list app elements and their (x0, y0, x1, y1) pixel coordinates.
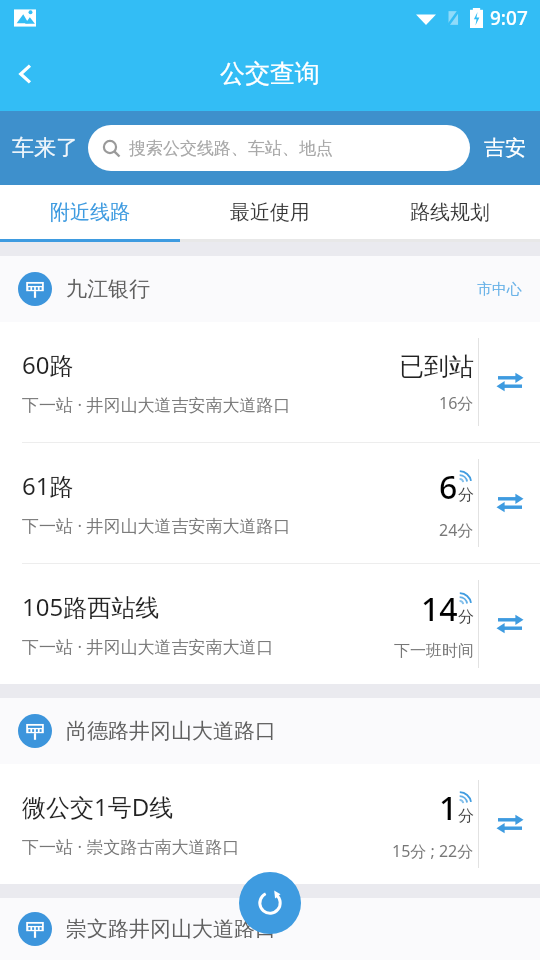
button[interactable]: Switch direction (479, 322, 540, 442)
staticText: 路线规划 (410, 200, 490, 225)
button[interactable]: 附近线路 (0, 185, 180, 239)
button[interactable]: Switch direction (479, 764, 540, 884)
button[interactable]: 路线规划 (360, 185, 540, 239)
staticText: 1 (439, 786, 458, 830)
staticText: 14 (421, 587, 458, 631)
staticText: 60路 (22, 348, 74, 381)
staticText: 下一站 · 崇文路古南大道路口 (22, 835, 240, 858)
staticText: 61路 (22, 469, 74, 502)
button[interactable]: Switch direction (479, 443, 540, 563)
staticText: 分 (458, 607, 474, 627)
staticText: 分 (458, 806, 474, 826)
staticText: 微公交1号D线 (22, 790, 174, 823)
staticText: 分 (458, 485, 474, 505)
staticText: 搜索公交线路、车站、地点 (129, 138, 333, 159)
staticText: 6 (439, 465, 458, 509)
staticText: 附近线路 (50, 200, 130, 225)
button[interactable]: Refresh (239, 872, 301, 934)
button[interactable]: 尚德路井冈山大道路口 (0, 698, 540, 764)
button[interactable]: 吉安 (482, 135, 528, 161)
staticText: 下一站 · 井冈山大道吉安南大道路口 (22, 393, 291, 416)
button[interactable]: 61路 (0, 443, 540, 563)
button[interactable]: Switch direction (479, 564, 540, 684)
staticText: 已到站 (399, 351, 474, 382)
button[interactable]: 最近使用 (180, 185, 360, 239)
button[interactable]: 105路西站线 (0, 564, 540, 684)
staticText: 市中心 (477, 280, 522, 299)
staticText: 15分 ; 22分 (392, 840, 474, 862)
staticText: 崇文路井冈山大道路口 (66, 916, 522, 942)
staticText: 车来了 (12, 134, 78, 162)
staticText: 105路西站线 (22, 590, 160, 623)
staticText: 下一班时间 (394, 641, 474, 661)
staticText: 九江银行 (66, 276, 477, 302)
button[interactable]: Back (0, 48, 52, 100)
button[interactable]: 60路 (0, 322, 540, 442)
staticText: 公交查询 (220, 58, 320, 89)
staticText: 吉安 (484, 135, 526, 161)
staticText: 最近使用 (230, 200, 310, 225)
staticText: 9:07 (490, 5, 528, 31)
staticText: 下一站 · 井冈山大道吉安南大道路口 (22, 514, 291, 537)
staticText: 尚德路井冈山大道路口 (66, 718, 522, 744)
button[interactable]: 崇文路井冈山大道路口 (0, 898, 540, 960)
button[interactable]: 九江银行 (0, 256, 540, 322)
staticText: 24分 (439, 519, 474, 541)
button[interactable]: 搜索公交线路、车站、地点 (88, 125, 470, 171)
staticText: 下一站 · 井冈山大道吉安南大道口 (22, 635, 274, 658)
button[interactable]: 微公交1号D线 (0, 764, 540, 884)
staticText: 16分 (439, 392, 474, 414)
